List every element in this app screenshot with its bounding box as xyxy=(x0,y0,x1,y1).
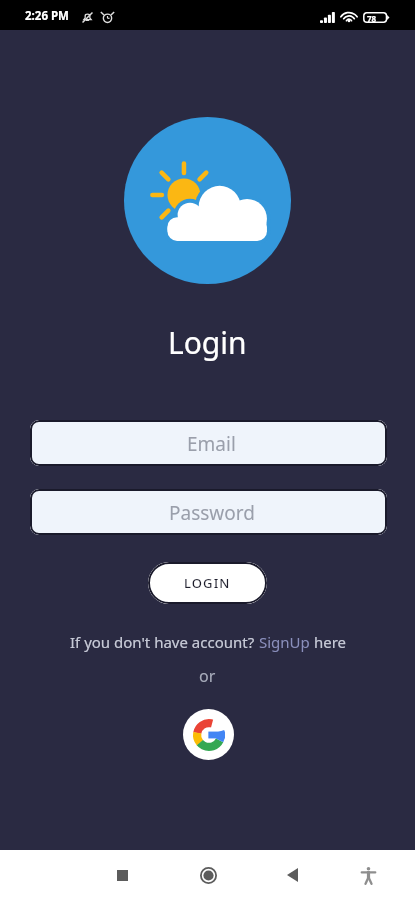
button[interactable]: LOGIN xyxy=(148,562,267,604)
button[interactable]: Home xyxy=(190,857,226,893)
button[interactable]: Sign in with Google xyxy=(183,709,234,760)
staticText: If you don't have account? xyxy=(70,632,259,652)
button[interactable]: SignUp xyxy=(259,632,310,652)
staticText: Password xyxy=(169,500,255,526)
staticText: here xyxy=(310,632,346,652)
button[interactable]: Accessibility xyxy=(350,857,386,893)
staticText: 78 xyxy=(367,13,377,24)
button[interactable]: Password xyxy=(30,489,387,535)
staticText: Login xyxy=(168,322,247,363)
staticText: or xyxy=(199,665,216,687)
staticText: Email xyxy=(187,431,236,457)
button[interactable]: Back xyxy=(274,857,310,893)
staticText: 2:26 PM xyxy=(25,8,69,24)
staticText: LOGIN xyxy=(184,574,231,592)
button[interactable]: Recent apps xyxy=(104,857,140,893)
button[interactable]: Email xyxy=(30,420,387,466)
